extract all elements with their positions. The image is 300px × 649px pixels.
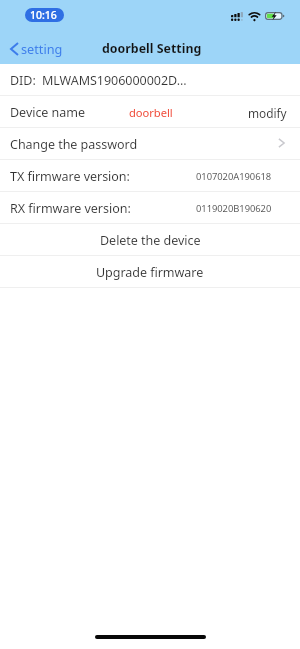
button[interactable]: setting	[0, 34, 73, 61]
staticText: MLWAMS1906000002D...	[42, 72, 187, 89]
button[interactable]: Delete the device	[0, 224, 300, 255]
button[interactable]: DID:	[0, 64, 300, 95]
button[interactable]: Change the password	[0, 128, 300, 159]
other: Wi-Fi	[247, 10, 263, 23]
staticText: Change the password	[10, 136, 138, 153]
staticText: setting	[21, 40, 63, 57]
other: Cellular signal	[231, 12, 243, 21]
staticText: Upgrade firmware	[96, 264, 204, 281]
staticText: RX firmware version:	[10, 200, 131, 217]
button[interactable]: TX firmware version:	[0, 160, 300, 191]
button[interactable]: Device name	[0, 96, 300, 127]
staticText: DID:	[10, 72, 36, 89]
staticText: 0119020B190620	[196, 202, 272, 215]
staticText: Device name	[10, 104, 86, 121]
other: Battery charging	[265, 12, 284, 20]
staticText: doorbell Setting	[102, 40, 202, 57]
staticText: 10:16	[30, 8, 57, 22]
staticText: Delete the device	[100, 232, 201, 249]
staticText: TX firmware version:	[10, 168, 130, 185]
staticText: doorbell	[129, 105, 173, 120]
button[interactable]: Upgrade firmware	[0, 256, 300, 287]
button[interactable]: RX firmware version:	[0, 192, 300, 223]
staticText: 0107020A190618	[196, 170, 272, 183]
staticText: modify	[248, 105, 287, 121]
